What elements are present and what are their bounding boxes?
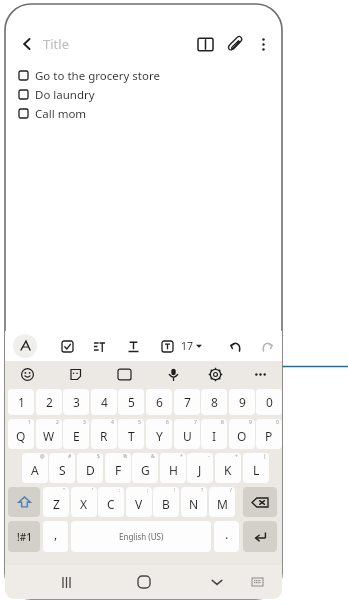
button[interactable]: 6 (146, 419, 172, 449)
staticText: 8 (221, 419, 224, 426)
button[interactable]: 9 (229, 389, 255, 415)
button[interactable]: ! (153, 487, 179, 517)
button[interactable]: 5 (118, 389, 144, 415)
button[interactable]: " (43, 487, 69, 517)
button[interactable]: ; (126, 487, 152, 517)
button[interactable]: Enter (243, 521, 277, 552)
button[interactable]: + (215, 453, 241, 483)
staticText: / (230, 487, 232, 494)
button[interactable]: Do laundry (19, 85, 282, 104)
button[interactable]: : (98, 487, 124, 517)
staticText: 6 (166, 419, 169, 426)
button[interactable]: Shift (8, 487, 40, 517)
button[interactable]: Undo (223, 334, 247, 358)
button[interactable]: Pen (13, 334, 37, 358)
button[interactable]: Hide keyboard (204, 569, 230, 595)
button[interactable]: Recents (53, 569, 79, 595)
button[interactable]: Voice input (161, 362, 185, 386)
button[interactable]: # (49, 453, 75, 483)
button[interactable]: / (209, 487, 235, 517)
button[interactable]: More options (250, 31, 276, 57)
staticText: ? (201, 487, 204, 494)
staticText: Y (156, 428, 163, 444)
button[interactable]: Back (13, 30, 41, 58)
staticText: . (225, 526, 229, 542)
button[interactable]: Text style (121, 334, 145, 358)
button[interactable]: 0 (256, 419, 282, 449)
staticText: - (208, 453, 210, 460)
staticText: 1 (28, 419, 31, 426)
button[interactable]: 5 (118, 419, 144, 449)
button[interactable]: 9 (229, 419, 255, 449)
button[interactable]: Paragraph (87, 334, 111, 358)
button[interactable]: Backspace (243, 487, 277, 517)
staticText: R (100, 428, 108, 444)
button[interactable]: Attach (222, 31, 248, 57)
button[interactable]: 3 (63, 419, 89, 449)
staticText: + (235, 453, 238, 460)
button[interactable]: Settings (203, 362, 227, 386)
button[interactable]: Home (131, 569, 157, 595)
button[interactable]: % (105, 453, 131, 483)
button[interactable]: ( (243, 453, 269, 483)
button[interactable]: 17 (181, 334, 202, 358)
staticText: 0 (276, 419, 279, 426)
button[interactable]: ' (71, 487, 97, 517)
staticText: P (265, 428, 273, 444)
button[interactable]: , (43, 521, 68, 552)
button[interactable]: Call mom (19, 104, 282, 123)
staticText: G (141, 462, 150, 478)
button[interactable]: 8 (201, 419, 227, 449)
button[interactable]: 2 (36, 419, 62, 449)
staticText: 4 (101, 394, 108, 410)
staticText: English (US) (119, 531, 164, 542)
button[interactable]: Switch keyboard (246, 571, 268, 593)
button[interactable]: 6 (146, 389, 172, 415)
button[interactable]: 3 (63, 389, 89, 415)
staticText: F (115, 462, 122, 478)
staticText: B (162, 496, 170, 512)
button[interactable]: GIF (112, 362, 136, 386)
button[interactable]: !#1 (8, 521, 40, 552)
button[interactable]: Redo (255, 334, 279, 358)
staticText: V (135, 496, 143, 512)
staticText: 3 (83, 419, 86, 426)
staticText: ' (92, 487, 94, 494)
button[interactable]: Emoji (15, 362, 39, 386)
button[interactable]: @ (22, 453, 48, 483)
button[interactable]: Text box (155, 334, 179, 358)
button[interactable]: 1 (8, 419, 34, 449)
button[interactable]: 2 (36, 389, 62, 415)
button[interactable]: English (US) (71, 521, 211, 552)
button[interactable]: - (187, 453, 213, 483)
button[interactable]: ? (181, 487, 207, 517)
button[interactable]: $ (77, 453, 103, 483)
button[interactable]: 7 (174, 419, 200, 449)
staticText: 7 (194, 419, 197, 426)
staticText: ! (174, 487, 176, 494)
button[interactable]: Checklist (55, 334, 79, 358)
button[interactable]: * (160, 453, 186, 483)
button[interactable]: 7 (174, 389, 200, 415)
staticText: H (169, 462, 178, 478)
button[interactable]: Sticker (63, 362, 87, 386)
staticText: 8 (211, 394, 218, 410)
staticText: @ (40, 453, 45, 460)
button[interactable]: & (132, 453, 158, 483)
button[interactable]: 8 (201, 389, 227, 415)
button[interactable]: 0 (256, 389, 282, 415)
button[interactable]: 4 (91, 419, 117, 449)
button[interactable]: 4 (91, 389, 117, 415)
staticText: 1 (18, 394, 25, 410)
button[interactable]: More (248, 362, 272, 386)
button[interactable]: Go to the grocery store (19, 66, 282, 85)
button[interactable]: . (214, 521, 239, 552)
staticText: 5 (128, 394, 135, 410)
button[interactable]: Book view (192, 31, 218, 57)
button[interactable]: 1 (8, 389, 34, 415)
staticText: Z (53, 496, 60, 512)
staticText: A (31, 462, 39, 478)
staticText: Title (43, 35, 69, 53)
staticText: , (54, 526, 58, 542)
staticText: O (237, 428, 247, 444)
